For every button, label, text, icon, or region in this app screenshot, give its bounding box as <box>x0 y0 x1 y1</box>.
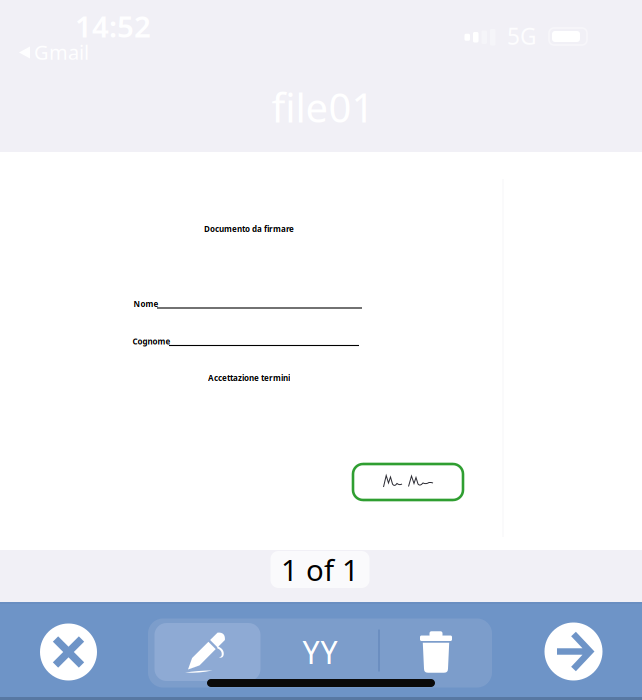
staticText: Gmail <box>34 39 89 65</box>
staticText: 1 of 1 <box>281 550 359 589</box>
button[interactable]: YY <box>264 619 376 683</box>
staticText: file01 <box>271 80 374 133</box>
button[interactable]: Close <box>40 623 97 680</box>
staticText: 14:52 <box>75 6 151 45</box>
button[interactable]: Gmail <box>19 39 89 65</box>
staticText: 5G <box>507 21 537 51</box>
staticText: Cognome <box>132 336 170 347</box>
button[interactable]: Next <box>544 622 602 680</box>
staticText: Accettazione termini <box>208 373 290 383</box>
button[interactable]: Draw <box>154 623 260 681</box>
staticText: YY <box>302 630 338 673</box>
staticText: Documento da firmare <box>204 224 294 234</box>
staticText: Nome <box>133 299 158 309</box>
button[interactable]: Delete <box>380 620 492 684</box>
